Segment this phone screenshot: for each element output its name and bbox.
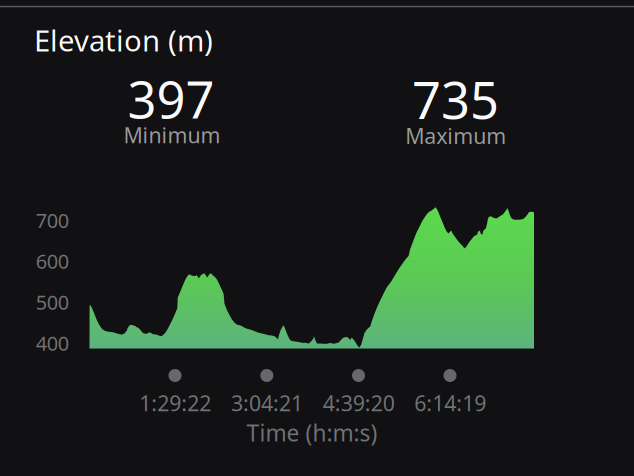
staticText: Elevation (m) [34, 21, 213, 60]
button[interactable]: 397 [36, 60, 317, 152]
staticText: 1:29:22 [139, 389, 211, 417]
staticText: 3:04:21 [231, 389, 303, 417]
button[interactable]: 735 [317, 60, 598, 152]
staticText: 6:14:19 [414, 389, 486, 417]
staticText: 4:39:20 [323, 389, 395, 417]
staticText: 500 [36, 289, 69, 315]
staticText: Minimum [124, 121, 221, 149]
staticText: 700 [36, 207, 69, 233]
staticText: 397 [127, 65, 214, 133]
staticText: 400 [36, 330, 69, 356]
staticText: 735 [412, 66, 499, 133]
button[interactable]: Elevation chart, 397 to 735 metres [0, 0, 634, 476]
staticText: Maximum [405, 121, 506, 150]
staticText: 600 [36, 248, 69, 274]
staticText: Time (h:m:s) [247, 418, 378, 448]
